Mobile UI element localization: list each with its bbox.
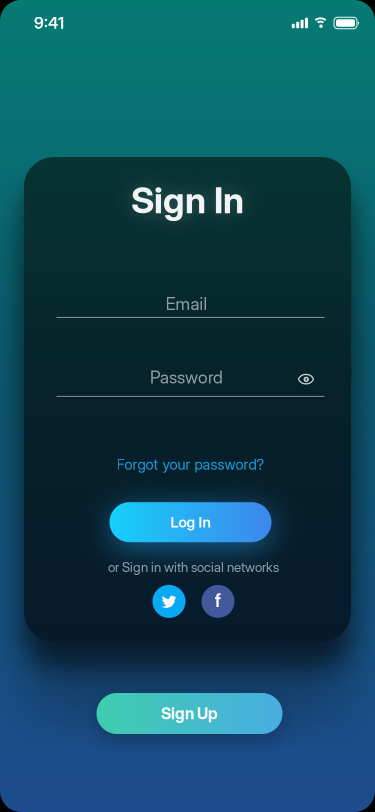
button[interactable]: Show password <box>297 374 314 385</box>
button[interactable]: Sign in with Facebook <box>201 585 234 618</box>
button[interactable]: Sign in with Twitter <box>152 585 185 618</box>
staticText: Email <box>165 293 207 314</box>
staticText: Sign In <box>131 179 244 221</box>
staticText: 9:41 <box>34 14 64 32</box>
button[interactable]: Password <box>56 367 324 397</box>
staticText: Password <box>150 367 223 387</box>
staticText: Sign Up <box>161 704 218 723</box>
button[interactable]: Log In <box>109 502 271 542</box>
staticText: Forgot your password? <box>116 456 264 473</box>
button[interactable]: Email <box>56 293 324 318</box>
staticText: or Sign in with social networks <box>108 559 279 575</box>
staticText: Log In <box>170 513 210 531</box>
staticText: f <box>214 589 221 611</box>
button[interactable]: Forgot your password? <box>116 456 264 473</box>
button[interactable]: Sign Up <box>96 693 282 734</box>
